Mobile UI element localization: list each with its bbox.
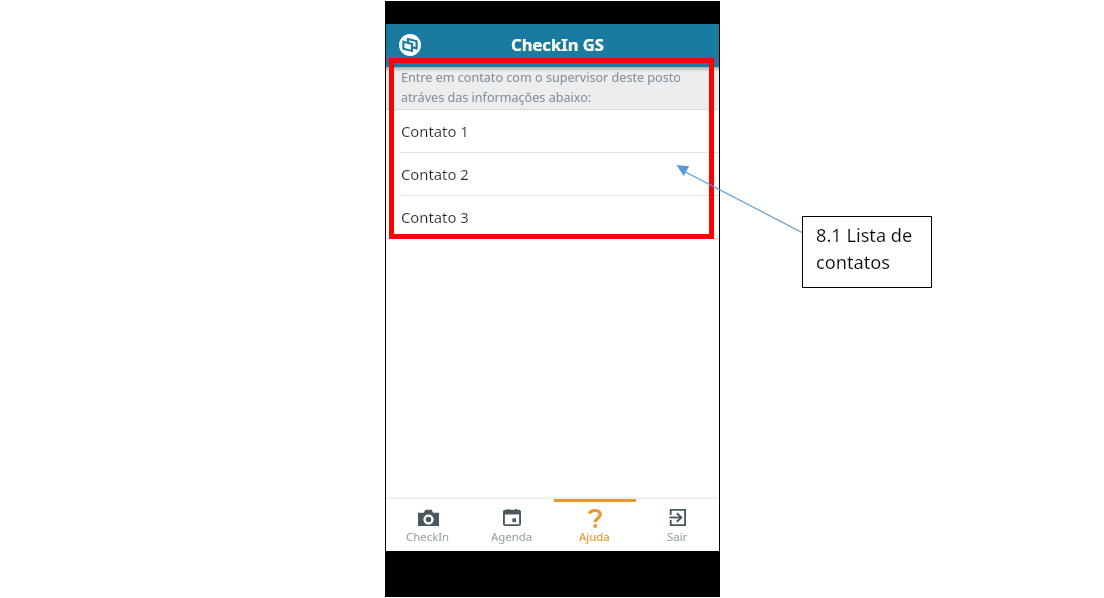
staticText: 8.1 Lista de contatos (816, 223, 913, 274)
staticText: Agenda (491, 529, 533, 545)
staticText: CheckIn (406, 529, 450, 545)
button[interactable]: CheckIn (386, 499, 470, 551)
button[interactable]: Sair (636, 499, 719, 551)
staticText: Sair (667, 529, 688, 545)
button[interactable]: App logo (399, 34, 421, 56)
button[interactable]: Contato 2 (386, 153, 719, 196)
button[interactable]: Agenda (470, 499, 553, 551)
button[interactable]: Contato 1 (386, 110, 719, 153)
staticText: Contato 3 (401, 207, 469, 227)
staticText: Entre em contato com o supervisor deste … (401, 69, 681, 106)
button[interactable]: Ajuda (553, 499, 636, 551)
staticText: CheckIn GS (511, 33, 604, 56)
staticText: Contato 2 (401, 164, 469, 184)
staticText: Ajuda (579, 529, 610, 545)
staticText: Contato 1 (401, 121, 469, 141)
button[interactable]: Contato 3 (386, 196, 719, 239)
